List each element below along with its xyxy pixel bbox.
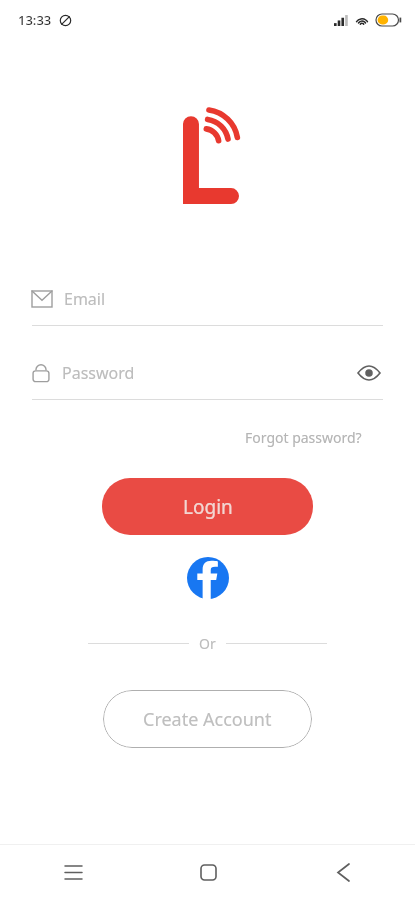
button[interactable]: Login	[102, 478, 313, 535]
staticText: Email	[64, 288, 106, 310]
button[interactable]: Recent apps	[49, 848, 97, 896]
staticText: Create Account	[143, 707, 272, 732]
button[interactable]: Back	[319, 848, 367, 896]
staticText: Password	[62, 362, 135, 384]
button[interactable]: Create Account	[103, 690, 312, 748]
staticText: 13:33	[18, 11, 52, 29]
button[interactable]: Email	[32, 282, 383, 326]
button[interactable]: Sign in with Facebook	[187, 557, 229, 599]
button[interactable]: Home	[184, 848, 232, 896]
button[interactable]: Password	[32, 356, 383, 400]
button[interactable]: Forgot password?	[243, 424, 364, 451]
staticText: Or	[199, 634, 216, 653]
staticText: Forgot password?	[245, 428, 362, 447]
button[interactable]: Show password	[355, 359, 383, 387]
staticText: Login	[183, 494, 233, 520]
